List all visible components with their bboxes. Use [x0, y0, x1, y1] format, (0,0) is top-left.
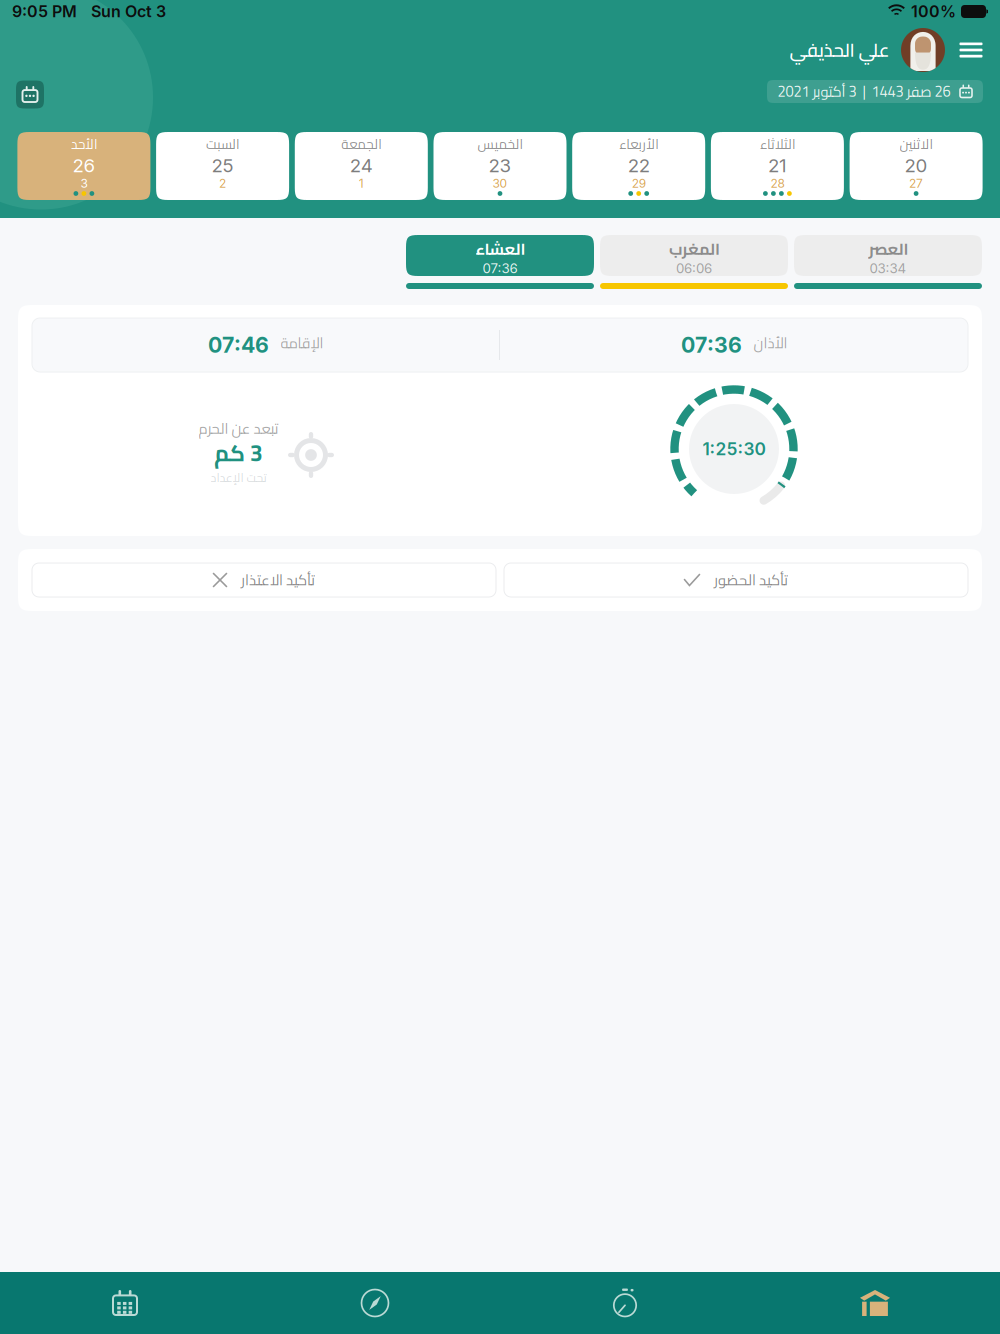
button[interactable]: Calendar: [0, 1272, 250, 1334]
staticText: 2: [219, 176, 226, 191]
staticText: الجمعة: [341, 131, 382, 156]
staticText: الثلاثاء: [759, 131, 795, 156]
staticText: 1:25:30: [702, 438, 765, 459]
staticText: 3 كم: [213, 432, 262, 474]
staticText: 26: [72, 154, 95, 177]
staticText: Sun Oct 3: [91, 2, 166, 21]
staticText: 3: [80, 176, 87, 191]
staticText: الأذان: [753, 329, 787, 357]
button[interactable]: الثلاثاء: [711, 132, 844, 200]
staticText: الأحد: [70, 131, 97, 156]
staticText: 03:34: [869, 260, 906, 276]
button[interactable]: Open calendar: [16, 80, 44, 108]
staticText: 100%: [911, 2, 956, 21]
staticText: السبت: [206, 131, 240, 156]
staticText: 22: [628, 154, 650, 177]
staticText: 29: [632, 176, 646, 191]
staticText: تبعد عن الحرم: [198, 415, 278, 442]
staticText: 07:36: [482, 260, 517, 276]
staticText: الأربعاء: [619, 131, 659, 156]
button[interactable]: Haram: [750, 1272, 1000, 1334]
staticText: 07:36: [681, 332, 742, 358]
staticText: 1: [359, 176, 364, 191]
button[interactable]: العصر: [794, 235, 982, 289]
staticText: تحت الإعداد: [210, 466, 266, 489]
button[interactable]: الأحد: [17, 132, 150, 200]
button[interactable]: تأكيد الاعتذار: [32, 563, 496, 597]
staticText: 20: [905, 154, 928, 177]
button[interactable]: الأربعاء: [572, 132, 705, 200]
staticText: تأكيد الحضور: [713, 566, 787, 594]
button[interactable]: تأكيد الحضور: [504, 563, 968, 597]
button[interactable]: Timer: [500, 1272, 750, 1334]
staticText: 25: [212, 154, 234, 177]
staticText: 30: [492, 176, 507, 191]
staticText: 06:06: [676, 260, 712, 276]
staticText: الإقامة: [280, 329, 323, 357]
staticText: 26 صفر 1443 | 3 أكتوبر 2021: [777, 78, 950, 105]
staticText: المغرب: [668, 234, 719, 264]
staticText: 23: [488, 154, 511, 177]
staticText: الخميس: [477, 131, 523, 156]
staticText: 24: [350, 154, 373, 177]
button[interactable]: الخميس: [433, 132, 566, 200]
button[interactable]: Menu: [958, 35, 984, 65]
staticText: علي الحذيفي: [789, 32, 889, 67]
button[interactable]: السبت: [156, 132, 289, 200]
staticText: 28: [770, 176, 784, 191]
staticText: 21: [768, 154, 787, 177]
button[interactable]: Qibla direction: [250, 1272, 500, 1334]
staticText: 07:46: [208, 332, 269, 358]
button[interactable]: المغرب: [600, 235, 788, 289]
staticText: العشاء: [475, 234, 525, 264]
button[interactable]: العشاء: [406, 235, 594, 289]
staticText: 27: [909, 176, 923, 191]
button[interactable]: الجمعة: [295, 132, 428, 200]
button[interactable]: الاثنين: [850, 132, 983, 200]
staticText: 9:05 PM: [12, 2, 77, 21]
staticText: الاثنين: [899, 131, 933, 156]
staticText: تأكيد الاعتذار: [240, 566, 314, 594]
staticText: العصر: [868, 234, 908, 264]
button[interactable]: 26 صفر 1443 | 3 أكتوبر 2021: [767, 80, 983, 103]
